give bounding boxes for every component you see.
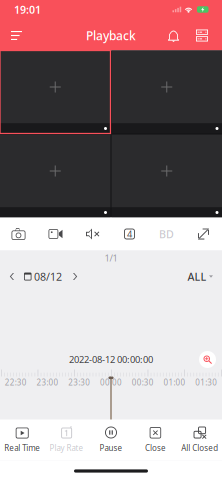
button[interactable]: Pause	[89, 419, 133, 460]
button[interactable]: Previous day	[6, 269, 18, 284]
staticText: 23:00	[37, 377, 59, 388]
staticText: 08/12	[34, 269, 62, 284]
staticText: 22:30	[5, 377, 27, 388]
button[interactable]: Play Rate	[44, 419, 89, 460]
button[interactable]: 08/12	[18, 265, 68, 288]
staticText: Close	[145, 442, 166, 453]
staticText: Playback	[86, 27, 136, 43]
button[interactable]: Fullscreen	[185, 217, 222, 250]
button[interactable]: Close	[133, 419, 178, 460]
button[interactable]: ALL	[184, 265, 216, 288]
staticText: 2022-08-12 00:00:00	[69, 353, 153, 366]
staticText: Real Time	[4, 442, 40, 453]
staticText: 01:00	[163, 377, 185, 388]
button[interactable]: Camera channel	[111, 50, 222, 133]
staticText: All Closed	[181, 442, 218, 453]
button[interactable]: Zoom timeline	[199, 351, 216, 368]
staticText: Pause	[99, 442, 122, 453]
staticText: 00:30	[132, 377, 154, 388]
button[interactable]: Devices	[188, 24, 218, 46]
staticText: ALL	[187, 269, 206, 284]
button[interactable]: Camera channel	[111, 134, 222, 217]
button[interactable]: Camera channel	[0, 134, 110, 217]
staticText: Play Rate	[50, 442, 84, 453]
button[interactable]: All Closed	[178, 419, 222, 460]
staticText: 1/1	[104, 252, 117, 264]
button[interactable]: Camera channel	[0, 50, 110, 133]
button[interactable]: Real Time	[0, 419, 44, 460]
staticText: 23:30	[68, 377, 90, 388]
staticText: 01:30	[195, 377, 217, 388]
button[interactable]: Record	[37, 217, 74, 250]
button[interactable]: BD	[148, 217, 185, 250]
button[interactable]: Mute	[74, 217, 111, 250]
button[interactable]: Notifications	[159, 25, 188, 46]
button[interactable]: Layout	[111, 217, 148, 250]
button[interactable]: Next day	[68, 269, 82, 284]
button[interactable]: Snapshot	[0, 217, 37, 250]
staticText: 00:00	[100, 377, 122, 388]
staticText: 4	[127, 228, 132, 240]
staticText: BD	[159, 227, 174, 241]
staticText: 19:01	[14, 2, 41, 17]
button[interactable]: Menu	[4, 24, 29, 47]
